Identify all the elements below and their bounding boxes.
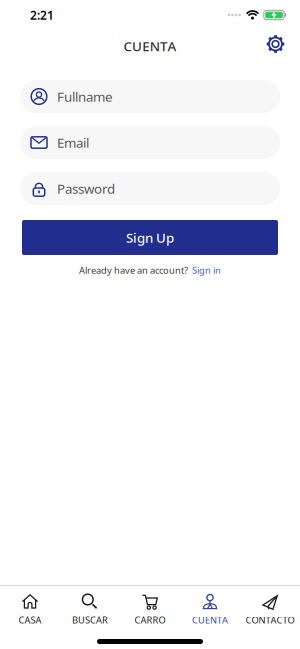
staticText: BUSCAR — [72, 614, 108, 626]
staticText: Fullname — [57, 88, 113, 105]
button[interactable]: Fullname — [20, 80, 280, 113]
button[interactable]: Settings — [266, 34, 285, 53]
staticText: 2:21 — [30, 7, 54, 23]
staticText: CARRO — [134, 614, 165, 626]
button[interactable]: Password — [20, 172, 280, 205]
button[interactable]: CONTACTO — [240, 594, 300, 626]
button[interactable]: Sign in — [192, 264, 221, 276]
staticText: CONTACTO — [245, 614, 294, 626]
button[interactable]: Email — [20, 126, 280, 159]
staticText: Password — [57, 180, 115, 197]
button[interactable]: CARRO — [120, 594, 180, 626]
button[interactable]: CUENTA — [180, 594, 240, 626]
button[interactable]: Sign Up — [22, 220, 278, 255]
button[interactable]: BUSCAR — [60, 594, 120, 626]
staticText: Sign in — [192, 264, 221, 276]
staticText: CUENTA — [123, 37, 176, 55]
staticText: CUENTA — [192, 614, 228, 626]
staticText: Already have an account? — [79, 264, 188, 276]
staticText: CASA — [18, 614, 41, 626]
staticText: Sign Up — [126, 229, 174, 246]
button[interactable]: CASA — [0, 594, 60, 626]
staticText: Email — [57, 134, 89, 151]
